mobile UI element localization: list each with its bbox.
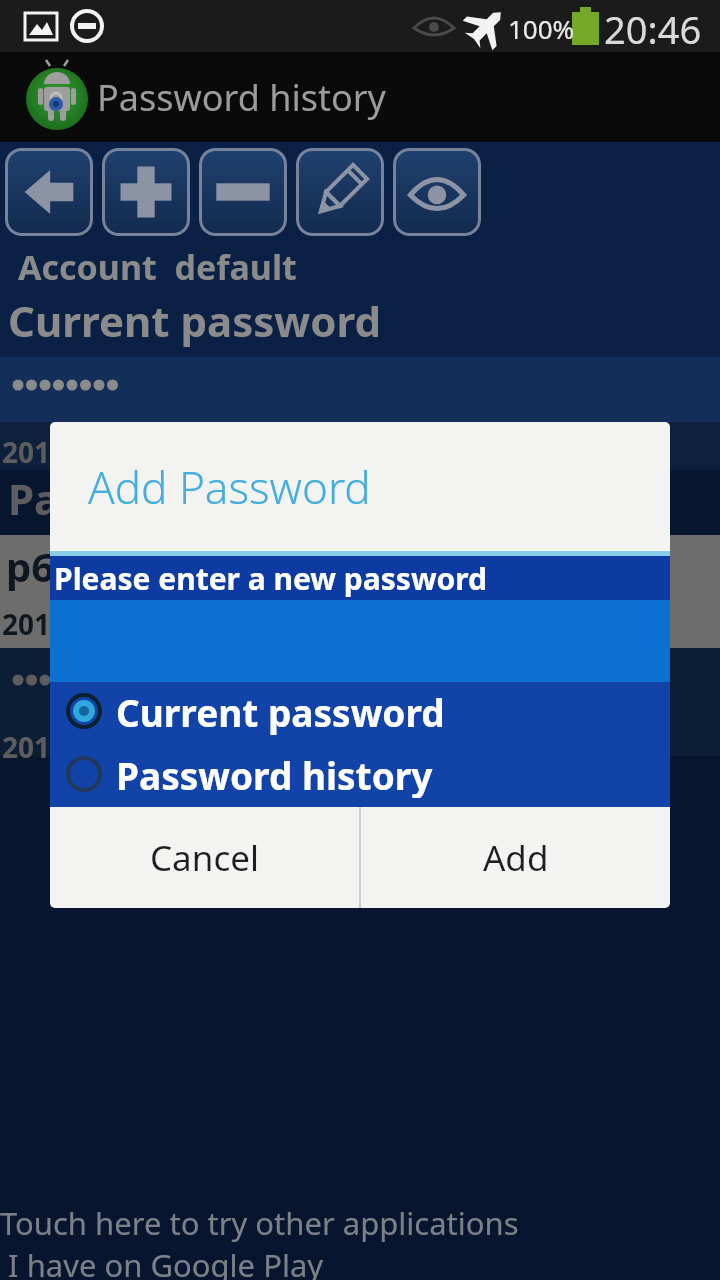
staticText: 100% (508, 11, 575, 46)
button[interactable] (393, 148, 481, 236)
staticText: 2014-06-28 20:45:40 (2, 728, 268, 766)
button[interactable]: Current password (66, 687, 445, 735)
staticText: 20:46 (604, 3, 702, 55)
button[interactable]: Touch here to try other applications (0, 1202, 519, 1280)
staticText: Add Password (88, 457, 371, 517)
staticText: Current password (116, 687, 445, 735)
staticText: I have on Google Play (0, 1244, 324, 1280)
button[interactable] (199, 148, 287, 236)
staticText: 2014-06-28 20:46:07 (2, 433, 268, 471)
button[interactable]: Add (361, 807, 670, 908)
staticText: Password history (116, 750, 433, 798)
button[interactable]: Cancel (50, 807, 359, 908)
staticText: Please enter a new password (54, 558, 488, 599)
button[interactable]: Password history (66, 750, 433, 798)
staticText: Cancel (150, 834, 259, 882)
staticText: p6FjPwB1 (6, 539, 197, 593)
staticText: Add (483, 834, 549, 882)
button[interactable] (102, 148, 190, 236)
staticText: Account default (18, 244, 297, 290)
button[interactable] (296, 148, 384, 236)
staticText: Password history (97, 73, 386, 122)
staticText: Current password (8, 292, 382, 349)
staticText: 2014-06-28 20:45:55 (2, 605, 268, 643)
button[interactable] (5, 148, 93, 236)
staticText: Touch here to try other applications (0, 1202, 519, 1244)
staticText: Password history (8, 470, 368, 527)
